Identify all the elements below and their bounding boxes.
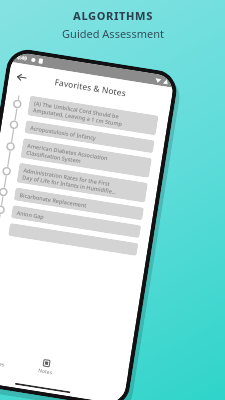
button[interactable]: Administration Rates for the First xyxy=(0,159,158,204)
staticText: ALGORITHMS xyxy=(73,8,153,23)
staticText: American Diabetes Association xyxy=(27,142,109,161)
button[interactable] xyxy=(0,219,148,258)
staticText: (A) The Umbilical Cord Should be xyxy=(34,99,120,120)
button[interactable]: Anion Gap xyxy=(0,201,151,240)
staticText: Acropustulosis of Infancy xyxy=(30,124,97,141)
staticText: Notes xyxy=(38,367,53,376)
staticText: Administration Rates for the First xyxy=(23,166,111,187)
staticText: Auto Notes xyxy=(0,358,5,369)
button[interactable]: (A) The Umbilical Cord Should be xyxy=(3,92,168,137)
button[interactable]: Auto Notes xyxy=(0,345,20,379)
staticText: Day of Life for Infants in Humidifie… xyxy=(22,173,118,195)
button[interactable]: American Diabetes Association xyxy=(0,134,162,180)
staticText: Bicarbonate Replacement xyxy=(19,191,87,209)
staticText: 4:49 xyxy=(16,54,27,62)
staticText: Classification System xyxy=(26,149,82,164)
staticText: Favorites & Notes xyxy=(54,76,127,99)
button[interactable]: Bicarbonate Replacement xyxy=(0,184,154,222)
button[interactable]: Notes xyxy=(16,353,74,387)
button[interactable]: Back xyxy=(12,68,30,86)
staticText: Guided Assessment xyxy=(62,26,164,41)
staticText: Amputated, Leaving a 1 cm Stump xyxy=(32,106,123,127)
staticText: Anion Gap xyxy=(16,209,45,220)
button[interactable]: Acropustulosis of Infancy xyxy=(1,116,165,155)
